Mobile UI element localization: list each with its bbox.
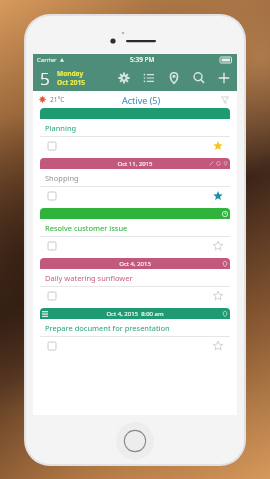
staticText: Oct 2015 xyxy=(57,78,85,87)
button[interactable]: Favorite xyxy=(211,139,225,153)
button[interactable]: Filter xyxy=(219,94,231,106)
staticText: Oct 4, 2015 xyxy=(119,260,151,268)
button[interactable]: Settings xyxy=(116,70,132,86)
staticText: 5:39 PM xyxy=(130,55,155,64)
button[interactable]: Location xyxy=(166,70,182,86)
button[interactable]: Resolve customer issue xyxy=(40,208,230,254)
button[interactable]: Complete task xyxy=(45,189,58,202)
staticText: Oct 11, 2015 xyxy=(117,160,153,168)
staticText: 5 xyxy=(40,67,50,90)
staticText: Oct 4, 2015 8:00 am xyxy=(106,310,164,318)
button[interactable]: Complete task xyxy=(45,139,58,152)
staticText: Resolve customer issue xyxy=(45,223,128,233)
button[interactable]: Add xyxy=(216,70,232,86)
button[interactable]: Complete task xyxy=(45,239,58,252)
staticText: Prepare document for presentation xyxy=(45,323,170,333)
button[interactable]: Favorite xyxy=(211,339,225,353)
button[interactable]: List view xyxy=(141,70,157,86)
staticText: Daily watering sunflower xyxy=(45,273,133,283)
button[interactable]: Favorite xyxy=(211,239,225,253)
button[interactable]: Favorite xyxy=(211,189,225,203)
button[interactable]: Complete task xyxy=(45,289,58,302)
button[interactable]: Oct 4, 2015 xyxy=(40,258,230,304)
button[interactable]: Active (5) xyxy=(122,94,161,106)
button[interactable]: Planning xyxy=(40,108,230,154)
button[interactable]: 5 xyxy=(38,67,52,90)
button[interactable]: Monday xyxy=(57,69,85,87)
staticText: Monday xyxy=(57,69,84,78)
button[interactable]: Search xyxy=(191,70,207,86)
staticText: Shopping xyxy=(45,173,79,183)
button[interactable]: Oct 4, 2015 8:00 am xyxy=(40,308,230,354)
button[interactable]: Oct 11, 2015 xyxy=(40,158,230,204)
staticText: 21°C xyxy=(50,95,65,104)
button[interactable]: Favorite xyxy=(211,289,225,303)
button[interactable]: Complete task xyxy=(45,339,58,352)
staticText: Carrier xyxy=(37,56,57,64)
staticText: Planning xyxy=(45,123,77,133)
staticText: Active (5) xyxy=(122,94,161,106)
